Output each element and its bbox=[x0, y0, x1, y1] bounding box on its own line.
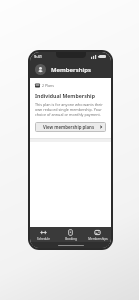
staticText: 2 Plans bbox=[42, 83, 55, 88]
button[interactable]: Booking bbox=[57, 227, 84, 242]
staticText: Memberships bbox=[51, 66, 91, 74]
staticText: 9:41 bbox=[34, 54, 42, 59]
button[interactable]: Memberships bbox=[84, 227, 111, 242]
staticText: View membership plans bbox=[38, 124, 99, 130]
staticText: Booking bbox=[65, 237, 77, 241]
staticText: This plan is for anyone who wants their … bbox=[35, 102, 106, 117]
button[interactable]: View membership plans bbox=[35, 122, 106, 132]
staticText: Schedule bbox=[37, 237, 50, 241]
staticText: Individual Membership bbox=[35, 92, 95, 99]
staticText: Memberships bbox=[88, 237, 108, 241]
button[interactable]: Schedule bbox=[30, 227, 57, 242]
button[interactable]: Profile bbox=[35, 64, 46, 75]
